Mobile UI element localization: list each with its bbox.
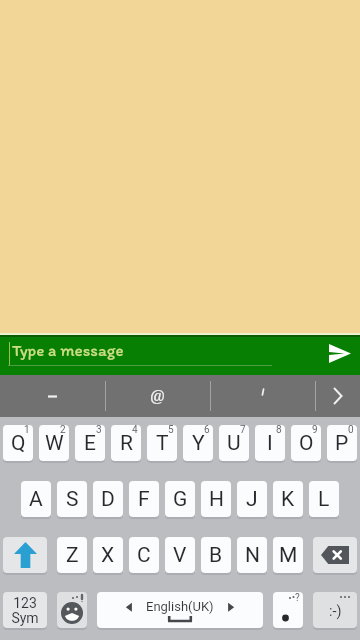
- staticText: I: [267, 431, 273, 456]
- staticText: English(UK): [146, 599, 214, 614]
- button[interactable]: [0, 337, 360, 375]
- button[interactable]: D: [93, 481, 123, 517]
- staticText: 3: [96, 425, 102, 436]
- button[interactable]: A: [21, 481, 51, 517]
- staticText: U: [227, 431, 241, 456]
- staticText: E: [84, 431, 96, 456]
- button[interactable]: [313, 537, 357, 573]
- button[interactable]: P: [327, 425, 357, 461]
- staticText: J: [246, 487, 258, 512]
- button[interactable]: [329, 344, 351, 363]
- button[interactable]: [57, 592, 87, 628]
- staticText: H: [209, 487, 224, 512]
- staticText: N: [245, 543, 260, 568]
- staticText: 7: [240, 425, 246, 436]
- staticText: Q: [11, 431, 26, 456]
- button[interactable]: Y: [183, 425, 213, 461]
- staticText: R: [120, 431, 133, 456]
- staticText: Z: [66, 543, 79, 568]
- button[interactable]: L: [309, 481, 339, 517]
- button[interactable]: W: [39, 425, 69, 461]
- button[interactable]: B: [201, 537, 231, 573]
- staticText: 8: [276, 425, 282, 436]
- staticText: ?: [295, 592, 300, 604]
- button[interactable]: English(UK): [97, 592, 263, 628]
- staticText: Y: [192, 431, 205, 456]
- staticText: B: [209, 543, 223, 568]
- button[interactable]: H: [201, 481, 231, 517]
- button[interactable]: ?: [273, 592, 303, 628]
- staticText: C: [137, 543, 151, 568]
- button[interactable]: [0, 375, 105, 417]
- button[interactable]: J: [237, 481, 267, 517]
- staticText: 9: [312, 425, 318, 436]
- button[interactable]: V: [165, 537, 195, 573]
- staticText: @: [150, 385, 165, 407]
- button[interactable]: K: [273, 481, 303, 517]
- button[interactable]: Z: [57, 537, 87, 573]
- button[interactable]: F: [129, 481, 159, 517]
- staticText: 6: [204, 425, 210, 436]
- staticText: 0: [348, 425, 354, 436]
- button[interactable]: C: [129, 537, 159, 573]
- button[interactable]: @: [105, 375, 210, 417]
- staticText: K: [281, 487, 295, 512]
- button[interactable]: G: [165, 481, 195, 517]
- button[interactable]: M: [273, 537, 303, 573]
- staticText: 4: [132, 425, 138, 436]
- button[interactable]: 123 Sym: [3, 592, 47, 628]
- staticText: P: [335, 431, 349, 456]
- staticText: X: [101, 543, 115, 568]
- staticText: L: [318, 487, 330, 512]
- button[interactable]: S: [57, 481, 87, 517]
- staticText: 1: [24, 425, 30, 436]
- staticText: M: [279, 543, 298, 568]
- staticText: 2: [60, 425, 66, 436]
- button[interactable]: Q: [3, 425, 33, 461]
- staticText: A: [29, 487, 43, 512]
- button[interactable]: N: [237, 537, 267, 573]
- button[interactable]: [3, 537, 47, 573]
- staticText: V: [173, 543, 187, 568]
- button[interactable]: T: [147, 425, 177, 461]
- button[interactable]: [210, 375, 315, 417]
- button[interactable]: [315, 375, 360, 417]
- button[interactable]: :-): [313, 592, 357, 628]
- button[interactable]: U: [219, 425, 249, 461]
- button[interactable]: E: [75, 425, 105, 461]
- staticText: D: [101, 487, 115, 512]
- staticText: 5: [168, 425, 174, 436]
- staticText: S: [66, 487, 79, 512]
- button[interactable]: R: [111, 425, 141, 461]
- button[interactable]: X: [93, 537, 123, 573]
- staticText: O: [299, 431, 314, 456]
- button[interactable]: O: [291, 425, 321, 461]
- button[interactable]: I: [255, 425, 285, 461]
- staticText: 123 Sym: [11, 595, 39, 626]
- staticText: T: [156, 431, 169, 456]
- staticText: F: [138, 487, 150, 512]
- staticText: :-): [329, 603, 342, 620]
- staticText: Type a message: [12, 340, 124, 360]
- staticText: G: [173, 487, 188, 512]
- staticText: W: [45, 431, 64, 456]
